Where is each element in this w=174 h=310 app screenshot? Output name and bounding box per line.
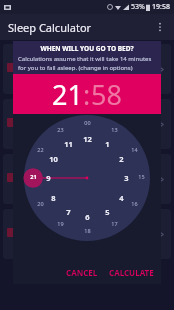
staticText: Calculations assume that it will take 14… [18,55,156,71]
staticText: : [83,76,91,113]
staticText: 18 [84,227,91,234]
staticText: WHEN WILL YOU GO TO BED? [18,44,156,53]
button[interactable]: CANCEL [64,265,100,280]
button[interactable] [3,209,171,259]
staticText: 17 [111,220,118,227]
button[interactable]: CALCULATE [107,265,156,280]
button[interactable]: More options [150,17,170,37]
staticText: 6 [85,212,90,222]
staticText: 21 [30,173,37,180]
button[interactable] [3,99,171,149]
staticText: 5 [105,207,110,217]
staticText: 21 [52,76,83,113]
button[interactable] [3,44,171,94]
staticText: 8 [51,193,56,203]
staticText: 22 [37,146,44,153]
button[interactable]: Select hour [24,115,150,241]
staticText: 14 [131,146,138,153]
staticText: 4 [119,193,124,203]
staticText: CALCULATE [109,267,154,278]
staticText: Sleep Calculator [8,20,92,35]
staticText: 23 [57,126,64,133]
button[interactable] [3,154,171,204]
staticText: 53% [131,2,145,12]
staticText: 2 [119,154,124,164]
staticText: 10 [49,154,58,164]
staticText: 16 [131,200,138,207]
button[interactable]: 58 [91,76,122,113]
staticText: 20 [37,200,44,207]
staticText: 11 [64,139,73,149]
staticText: 19:58 [152,2,170,12]
staticText: 13 [111,126,118,133]
staticText: 00 [84,119,91,126]
staticText: 3 [124,173,129,183]
staticText: 19 [57,220,64,227]
staticText: 1 [105,139,110,149]
staticText: 7 [66,207,71,217]
button[interactable]: 21 [52,76,83,113]
staticText: 9 [46,173,51,183]
staticText: 15 [138,173,145,180]
staticText: CANCEL [66,267,98,278]
staticText: 12 [83,134,92,144]
staticText: 58 [91,76,122,113]
